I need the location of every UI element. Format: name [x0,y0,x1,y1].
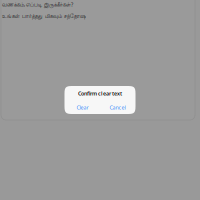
staticText: Clear [76,104,88,111]
button[interactable]: Clear [65,102,100,113]
staticText: உங்கள் பார்த்தது மிகவும் சந்தோஷ [2,13,86,20]
staticText: Confirm clear text [78,90,122,97]
staticText: வணக்கம், எப்படி இருக்கீர்கள்? [2,1,73,8]
staticText: Cancel [109,104,125,111]
button[interactable]: Cancel [100,102,135,113]
